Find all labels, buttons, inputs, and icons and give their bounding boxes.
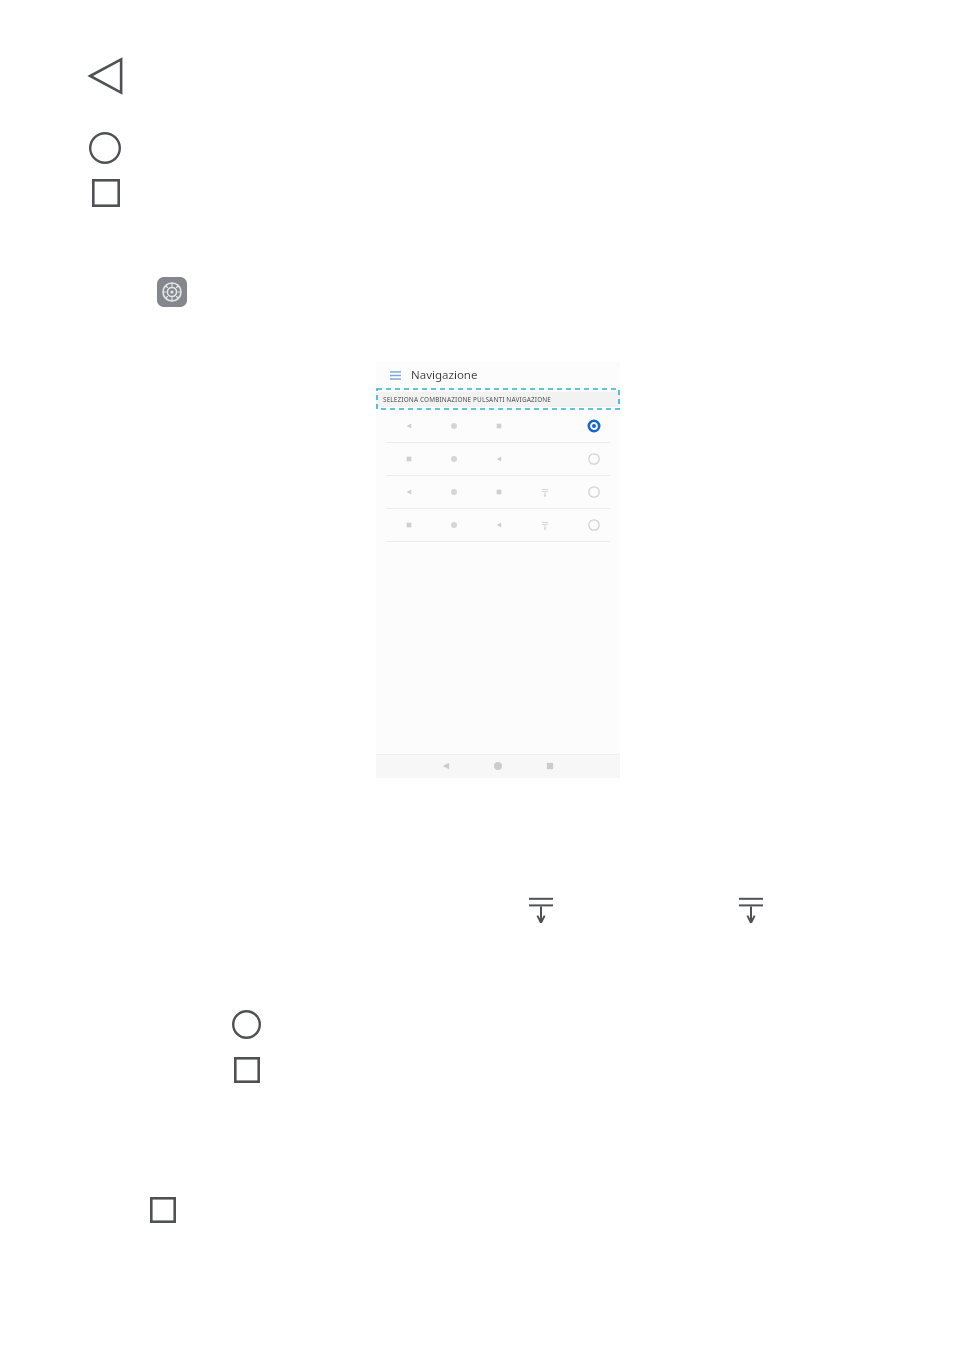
- staticText: SELEZIONA COMBINAZIONE PULSANTI NAVIGAZI…: [383, 395, 552, 404]
- button[interactable]: Back: [420, 754, 472, 778]
- button[interactable]: Recents: [234, 1057, 260, 1083]
- button[interactable]: Recents: [92, 179, 120, 207]
- button[interactable]: [376, 509, 620, 541]
- button[interactable]: Hide navigation bar: [526, 894, 556, 924]
- button[interactable]: [376, 410, 620, 442]
- button[interactable]: Back: [88, 58, 124, 94]
- button[interactable]: Home: [89, 132, 121, 164]
- button[interactable]: Home: [232, 1010, 261, 1039]
- button[interactable]: Home: [472, 754, 524, 778]
- button[interactable]: Menu: [388, 368, 402, 382]
- button[interactable]: Recents: [524, 754, 576, 778]
- button[interactable]: [376, 476, 620, 508]
- button[interactable]: Hide navigation bar: [736, 894, 766, 924]
- button[interactable]: Recents: [150, 1197, 176, 1223]
- button[interactable]: Settings: [157, 277, 187, 307]
- staticText: Navigazione: [411, 367, 478, 383]
- button[interactable]: [376, 443, 620, 475]
